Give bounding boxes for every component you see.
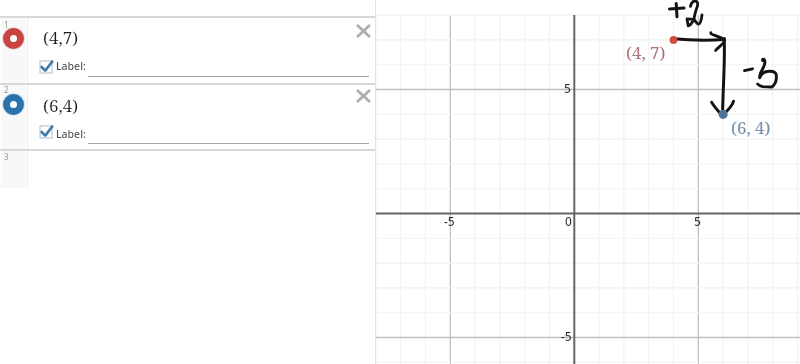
- button[interactable]: [0, 82, 375, 150]
- staticText: Label:: [56, 127, 86, 141]
- staticText: -5: [444, 213, 455, 229]
- button[interactable]: Delete expression: [350, 18, 376, 44]
- staticText: 0: [565, 213, 572, 229]
- staticText: 3: [4, 151, 9, 162]
- button[interactable]: Show label: [40, 126, 52, 138]
- staticText: -5: [561, 328, 572, 344]
- staticText: Label:: [56, 59, 86, 73]
- button[interactable]: Show label: [40, 61, 52, 73]
- staticText: 2: [4, 84, 9, 95]
- staticText: 5: [694, 213, 701, 229]
- staticText: (4,7): [43, 26, 79, 49]
- staticText: (6,4): [43, 94, 79, 117]
- button[interactable]: Delete expression: [350, 83, 376, 109]
- staticText: (4, 7): [626, 41, 666, 64]
- button[interactable]: [0, 17, 375, 82]
- staticText: (6, 4): [731, 116, 771, 139]
- staticText: 5: [564, 80, 571, 96]
- staticText: 1: [4, 19, 9, 30]
